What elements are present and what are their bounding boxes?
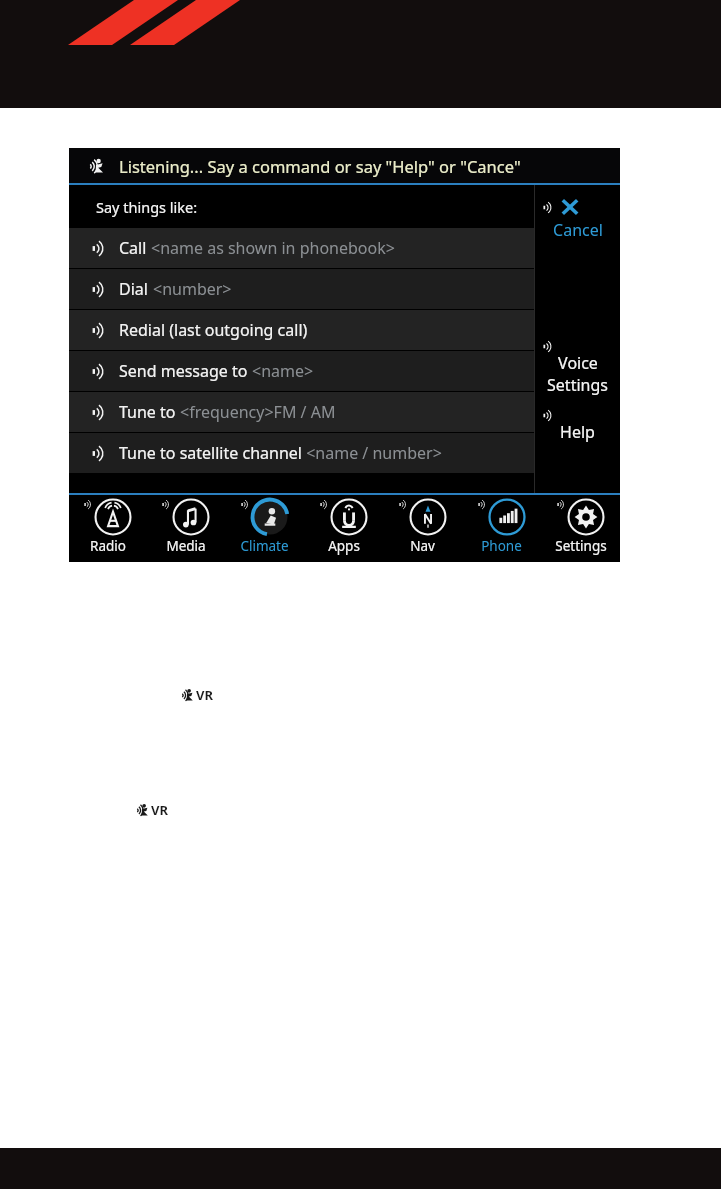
staticText: Call	[119, 237, 151, 259]
button[interactable]: Help	[535, 410, 620, 443]
button[interactable]: Tune to satellite channel	[69, 433, 534, 473]
button[interactable]: Apps	[304, 495, 383, 562]
staticText: <name as shown in phonebook>	[151, 237, 395, 259]
button[interactable]: Phone	[462, 495, 541, 562]
button[interactable]: Redial (last outgoing call)	[69, 310, 534, 350]
staticText: Nav	[410, 537, 435, 555]
staticText: Listening... Say a command or say "Help"…	[119, 155, 521, 177]
button[interactable]: Dial	[69, 269, 534, 309]
staticText: Tune to satellite channel	[119, 442, 302, 464]
staticText: Help	[560, 421, 595, 443]
button[interactable]: Send message to	[69, 351, 534, 391]
staticText: VR	[151, 801, 168, 819]
staticText: Climate	[240, 537, 289, 555]
button[interactable]: Nav	[383, 495, 462, 562]
staticText: <name / number>	[302, 442, 442, 464]
staticText: Media	[166, 537, 206, 555]
staticText: <name>	[252, 360, 314, 382]
staticText: <frequency>FM / AM	[180, 401, 336, 423]
button[interactable]: Settings	[541, 495, 620, 562]
staticText: Apps	[328, 537, 360, 555]
staticText: VR	[196, 686, 213, 704]
staticText: Say things like:	[96, 197, 198, 217]
button[interactable]: Call	[69, 228, 534, 268]
staticText: Tune to	[119, 401, 180, 423]
button[interactable]: Tune to	[69, 392, 534, 432]
staticText: Radio	[90, 537, 126, 555]
staticText: Voice	[558, 352, 598, 374]
staticText: Dial	[119, 278, 153, 300]
button[interactable]: Voice Settings	[535, 341, 620, 396]
staticText: Settings	[555, 537, 607, 555]
button[interactable]: Climate	[225, 495, 304, 562]
staticText: Redial (last outgoing call)	[119, 319, 308, 341]
button[interactable]: Cancel	[535, 195, 620, 241]
staticText: <number>	[153, 278, 232, 300]
button[interactable]: Media	[147, 495, 225, 562]
staticText: Phone	[481, 537, 522, 555]
staticText: Settings	[547, 374, 608, 396]
staticText: Cancel	[553, 219, 603, 241]
button[interactable]: Radio	[69, 495, 147, 562]
staticText: Send message to	[119, 360, 252, 382]
